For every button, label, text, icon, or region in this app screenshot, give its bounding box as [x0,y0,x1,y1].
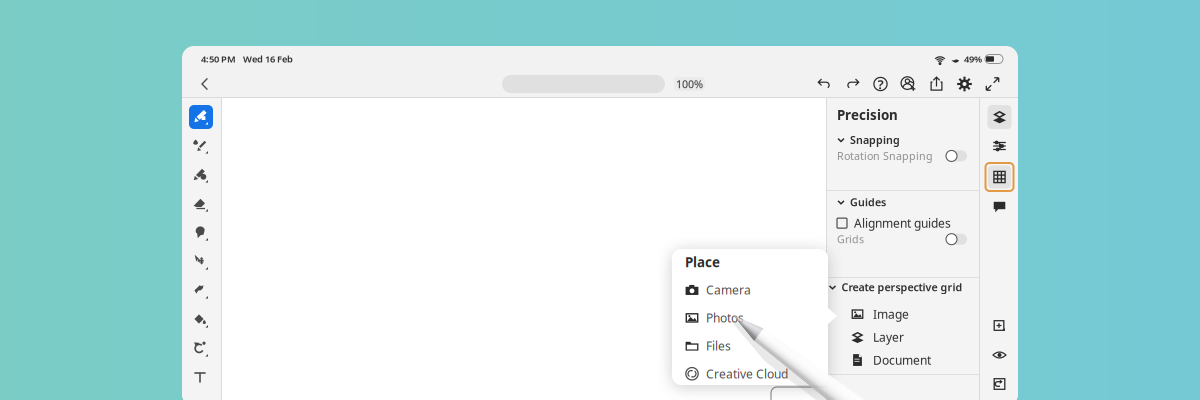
button[interactable]: Redo [844,75,861,92]
button[interactable]: Tool 2 [181,163,221,187]
button[interactable]: Tool 7 [181,308,221,332]
button[interactable]: Comments [980,195,1019,219]
staticText: Layer [873,329,904,345]
button[interactable]: Share [928,75,945,92]
button[interactable]: Image [837,306,967,322]
button[interactable]: Invite collaborator [900,75,917,92]
staticText: Rotation Snapping [837,149,933,163]
button[interactable]: Tool 9 [181,366,221,390]
button[interactable]: Snapping [837,133,967,147]
button[interactable]: Full screen [984,75,1001,92]
staticText: Document [873,352,931,368]
staticText: Creative Cloud [706,366,788,382]
staticText: Wed 16 Feb [243,53,293,65]
button[interactable]: Creative Cloud [685,366,818,382]
button[interactable]: Alignment guides [837,215,967,231]
button[interactable]: Camera [685,282,818,298]
button[interactable]: Back [190,71,220,97]
button[interactable]: Files [685,338,818,354]
staticText: Place [685,253,720,271]
button[interactable]: Grids [946,234,967,245]
staticText: Precision [837,106,898,124]
button[interactable]: Properties [980,134,1019,158]
staticText: Grids [837,232,864,246]
button[interactable]: Undo [816,75,833,92]
staticText: Photos [706,310,744,326]
button[interactable]: Export [980,372,1019,396]
button[interactable]: Add artboard [980,314,1019,338]
staticText: Camera [706,282,751,298]
button[interactable]: Tool 5 [181,250,221,274]
button[interactable]: Guides [837,195,967,209]
button[interactable]: Tool 1 [181,134,221,158]
staticText: Create perspective grid [841,280,962,294]
staticText: Snapping [850,133,900,147]
button[interactable]: Pen tool [181,105,221,129]
button[interactable]: Tool 3 [181,192,221,216]
staticText: 49% [964,53,982,65]
staticText: 4:50 PM [201,53,236,65]
staticText: 100% [676,77,703,91]
button[interactable]: Photos [685,310,818,326]
button[interactable]: Layer [837,329,967,345]
button[interactable]: Rotation Snapping [946,150,967,161]
button[interactable]: Tool 4 [181,221,221,245]
button[interactable]: Tool 6 [181,279,221,303]
button[interactable]: Layers [980,105,1019,129]
staticText: Alignment guides [854,215,951,231]
button[interactable]: Create perspective grid [828,280,975,294]
button[interactable]: Grid settings [980,162,1019,192]
staticText: Image [873,306,909,322]
button[interactable]: Tool 8 [181,337,221,361]
button[interactable]: Help [872,75,889,92]
button[interactable]: Document [837,352,967,368]
staticText: ? [877,75,883,93]
button[interactable]: Settings [956,75,973,92]
button[interactable]: Preview [980,343,1019,367]
staticText: Guides [850,195,886,209]
button[interactable]: 100% [674,77,705,91]
staticText: Files [706,338,731,354]
